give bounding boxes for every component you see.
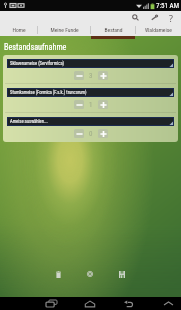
button[interactable]: Location bbox=[82, 266, 98, 282]
button[interactable]: Save bbox=[114, 266, 130, 282]
staticText: 1 bbox=[89, 101, 93, 109]
staticText: Meine Funde bbox=[50, 27, 79, 34]
button[interactable]: Recents bbox=[42, 297, 60, 310]
staticText: Waldameise bbox=[145, 27, 172, 34]
staticText: Home bbox=[12, 27, 26, 34]
button[interactable]: Increase bbox=[98, 129, 108, 138]
button[interactable]: Help bbox=[164, 11, 177, 24]
button[interactable]: Bestand bbox=[91, 24, 135, 39]
button[interactable]: Home bbox=[81, 297, 99, 310]
staticText: 7:51 AM bbox=[156, 2, 179, 10]
staticText: 3 bbox=[89, 72, 93, 80]
button[interactable]: Increase bbox=[98, 71, 108, 80]
staticText: Sklavenameise (Serviformica) bbox=[10, 61, 65, 66]
staticText: Bestand bbox=[104, 27, 123, 34]
button[interactable]: Search bbox=[129, 11, 142, 24]
button[interactable]: Sklavenameise (Serviformica) bbox=[8, 60, 173, 67]
button[interactable]: Delete bbox=[50, 266, 66, 282]
staticText: 0 bbox=[89, 130, 93, 138]
staticText: Stumkameise (Formica (F.s.k.) truncorum) bbox=[10, 90, 87, 95]
button[interactable]: Decrease bbox=[74, 100, 84, 109]
button[interactable]: Stumkameise (Formica (F.s.k.) truncorum) bbox=[8, 89, 173, 96]
button[interactable]: Home bbox=[0, 24, 37, 39]
button[interactable]: Increase bbox=[98, 100, 108, 109]
button[interactable]: Ameise auswählen... bbox=[8, 118, 173, 125]
staticText: Ameise auswählen... bbox=[10, 119, 48, 124]
staticText: ? bbox=[169, 12, 173, 24]
button[interactable]: Decrease bbox=[74, 71, 84, 80]
button[interactable]: Back bbox=[119, 297, 137, 310]
button[interactable]: Decrease bbox=[74, 129, 84, 138]
button[interactable]: Settings bbox=[147, 11, 160, 24]
button[interactable]: Waldameise bbox=[136, 24, 181, 39]
button[interactable]: Meine Funde bbox=[38, 24, 90, 39]
staticText: Bestandsaufnahme bbox=[4, 42, 67, 52]
button[interactable]: Show menu bbox=[159, 297, 177, 310]
